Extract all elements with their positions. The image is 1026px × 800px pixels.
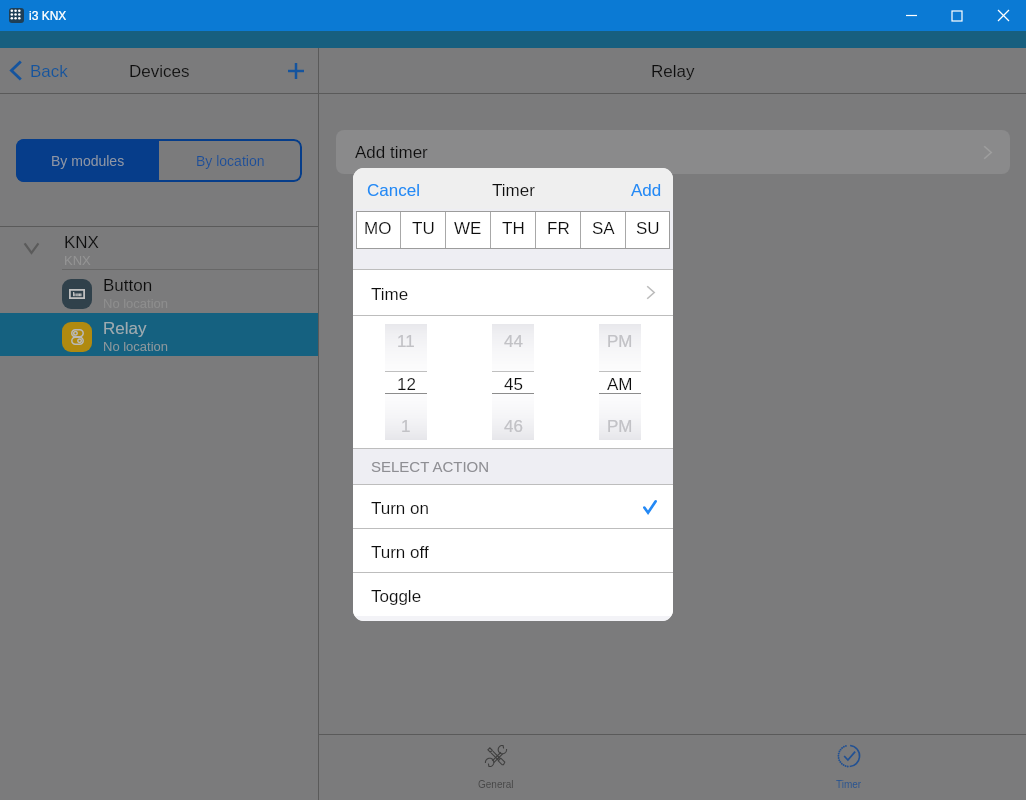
button[interactable]: Time (353, 270, 673, 315)
staticText: FR (547, 219, 570, 238)
staticText: KNX (64, 253, 91, 268)
button[interactable]: Add device (274, 49, 318, 93)
button[interactable]: Close (980, 0, 1026, 31)
button[interactable]: Add (619, 171, 673, 206)
staticText: Time (371, 285, 409, 304)
staticText: 45 (504, 375, 523, 391)
button[interactable]: Back (0, 55, 78, 86)
staticText: TU (412, 219, 435, 238)
button[interactable]: Turn on (353, 485, 673, 528)
staticText: Add timer (355, 143, 428, 162)
staticText: Turn on (371, 499, 429, 518)
staticText: 1 (401, 417, 411, 433)
button[interactable]: FR (536, 211, 580, 249)
staticText: WE (454, 219, 482, 238)
button[interactable]: Timer (672, 735, 1026, 800)
button[interactable]: By modules (16, 139, 159, 182)
button[interactable]: Toggle (353, 573, 673, 616)
staticText: AM (607, 375, 633, 391)
button[interactable]: Maximize (934, 0, 980, 31)
button[interactable]: By location (159, 139, 302, 182)
staticText: Button (103, 276, 153, 295)
staticText: Cancel (367, 181, 420, 200)
button[interactable]: Button (0, 270, 318, 313)
staticText: Back (30, 62, 68, 81)
staticText: Add (631, 181, 662, 200)
staticText: Devices (129, 62, 190, 81)
staticText: Toggle (371, 587, 422, 606)
staticText: By location (196, 153, 265, 169)
button[interactable]: Relay (0, 313, 318, 356)
staticText: SELECT ACTION (371, 458, 490, 475)
button[interactable]: SU (626, 211, 670, 249)
staticText: MO (364, 219, 392, 238)
staticText: No location (103, 339, 169, 354)
staticText: Timer (492, 181, 535, 200)
staticText: Timer (836, 779, 862, 790)
button[interactable]: Turn off (353, 529, 673, 572)
staticText: TH (502, 219, 525, 238)
staticText: Relay (651, 62, 695, 81)
button[interactable]: TU (401, 211, 445, 249)
staticText: No location (103, 296, 169, 311)
button[interactable]: KNX (0, 227, 318, 269)
staticText: General (478, 779, 514, 790)
staticText: 44 (504, 332, 523, 348)
staticText: Turn off (371, 543, 429, 562)
staticText: Relay (103, 319, 147, 338)
staticText: SA (592, 219, 615, 238)
button[interactable]: WE (446, 211, 490, 249)
button[interactable]: Add timer (336, 130, 1010, 174)
staticText: By modules (51, 153, 125, 169)
button[interactable]: General (319, 735, 672, 800)
staticText: i3 KNX (29, 9, 67, 22)
button[interactable]: SA (581, 211, 625, 249)
staticText: 46 (504, 417, 523, 433)
button[interactable]: Cancel (353, 171, 432, 206)
button[interactable]: Minimize (888, 0, 934, 31)
button[interactable]: MO (356, 211, 400, 249)
staticText: 11 (397, 332, 415, 348)
staticText: PM (607, 332, 633, 348)
staticText: 12 (397, 375, 416, 391)
staticText: SU (636, 219, 660, 238)
button[interactable]: TH (491, 211, 535, 249)
staticText: PM (607, 417, 633, 433)
staticText: KNX (64, 233, 99, 252)
